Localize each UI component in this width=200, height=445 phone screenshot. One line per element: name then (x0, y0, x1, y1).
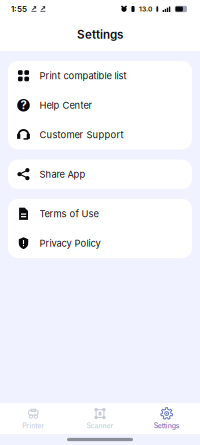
staticText: Customer Support (39, 129, 123, 140)
staticText: Printer (22, 422, 44, 430)
button[interactable]: Customer Support (8, 120, 192, 149)
staticText: Privacy Policy (39, 238, 100, 249)
button[interactable]: Printer (0, 403, 67, 434)
staticText: Print compatible list (39, 70, 126, 81)
staticText: Help Center (39, 100, 92, 111)
button[interactable]: Settings (133, 403, 200, 434)
staticText: Settings (77, 27, 123, 41)
button[interactable]: Print compatible list (8, 61, 192, 90)
staticText: Terms of Use (39, 208, 98, 219)
button[interactable]: ? (8, 90, 192, 120)
button[interactable]: Scanner (67, 403, 133, 434)
button[interactable]: Share App (8, 159, 192, 189)
staticText: Settings (154, 422, 180, 430)
staticText: 1:55 (11, 4, 27, 14)
staticText: Scanner (86, 422, 113, 430)
button[interactable]: Terms of Use (8, 199, 192, 228)
button[interactable]: Privacy Policy (8, 228, 192, 258)
staticText: Share App (39, 169, 85, 180)
staticText: ? (20, 98, 26, 112)
staticText: 13.0 (139, 5, 152, 13)
